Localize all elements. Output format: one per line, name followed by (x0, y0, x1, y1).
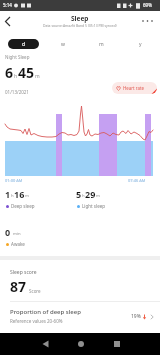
button[interactable]: w (43, 35, 82, 53)
button[interactable] (107, 333, 160, 355)
staticText: Score (29, 288, 41, 294)
staticText: m (96, 193, 100, 199)
button[interactable] (0, 11, 16, 33)
staticText: m (25, 193, 29, 199)
staticText: 1 (5, 188, 11, 200)
staticText: 01/13/2021 (5, 89, 29, 95)
button[interactable]: Heart rate (112, 82, 157, 94)
staticText: 45 (18, 63, 35, 82)
button[interactable]: y (121, 35, 160, 53)
button[interactable]: Proportion of deep sleep (0, 302, 160, 330)
button[interactable] (138, 11, 158, 33)
staticText: h (14, 73, 18, 80)
button[interactable]: m (82, 35, 121, 53)
staticText: w (61, 41, 65, 48)
button[interactable] (54, 333, 107, 355)
staticText: 19% (131, 313, 141, 320)
staticText: 69% (143, 2, 152, 8)
staticText: 87 (10, 277, 27, 296)
staticText: Light sleep (82, 203, 106, 209)
staticText: 6 (5, 63, 14, 82)
staticText: d (22, 41, 26, 48)
staticText: min (13, 231, 21, 237)
staticText: 5:14 (3, 2, 12, 8)
staticText: 5 (76, 188, 82, 200)
staticText: Sleep score (10, 269, 37, 276)
staticText: Proportion of deep sleep (10, 308, 81, 316)
staticText: h (82, 193, 85, 199)
staticText: Deep sleep (11, 203, 35, 209)
staticText: 29 (85, 188, 96, 200)
staticText: Awake (11, 241, 25, 247)
staticText: Heart rate (123, 85, 144, 91)
staticText: m (99, 41, 104, 48)
staticText: h (11, 193, 14, 199)
staticText: y (139, 41, 142, 48)
staticText: Night Sleep (5, 54, 30, 60)
staticText: Sleep (71, 14, 89, 23)
staticText: 07:46 AM (128, 178, 146, 183)
staticText: 16 (14, 188, 25, 200)
button[interactable] (0, 333, 54, 355)
staticText: 01:00 AM (5, 178, 23, 183)
staticText: Data source:Amazfit Band 5 (05:13 PM syn… (43, 23, 117, 28)
staticText: m (35, 73, 40, 80)
button[interactable]: d (8, 39, 39, 49)
staticText: Reference values 20-60% (10, 318, 63, 324)
staticText: 0 (5, 226, 11, 238)
